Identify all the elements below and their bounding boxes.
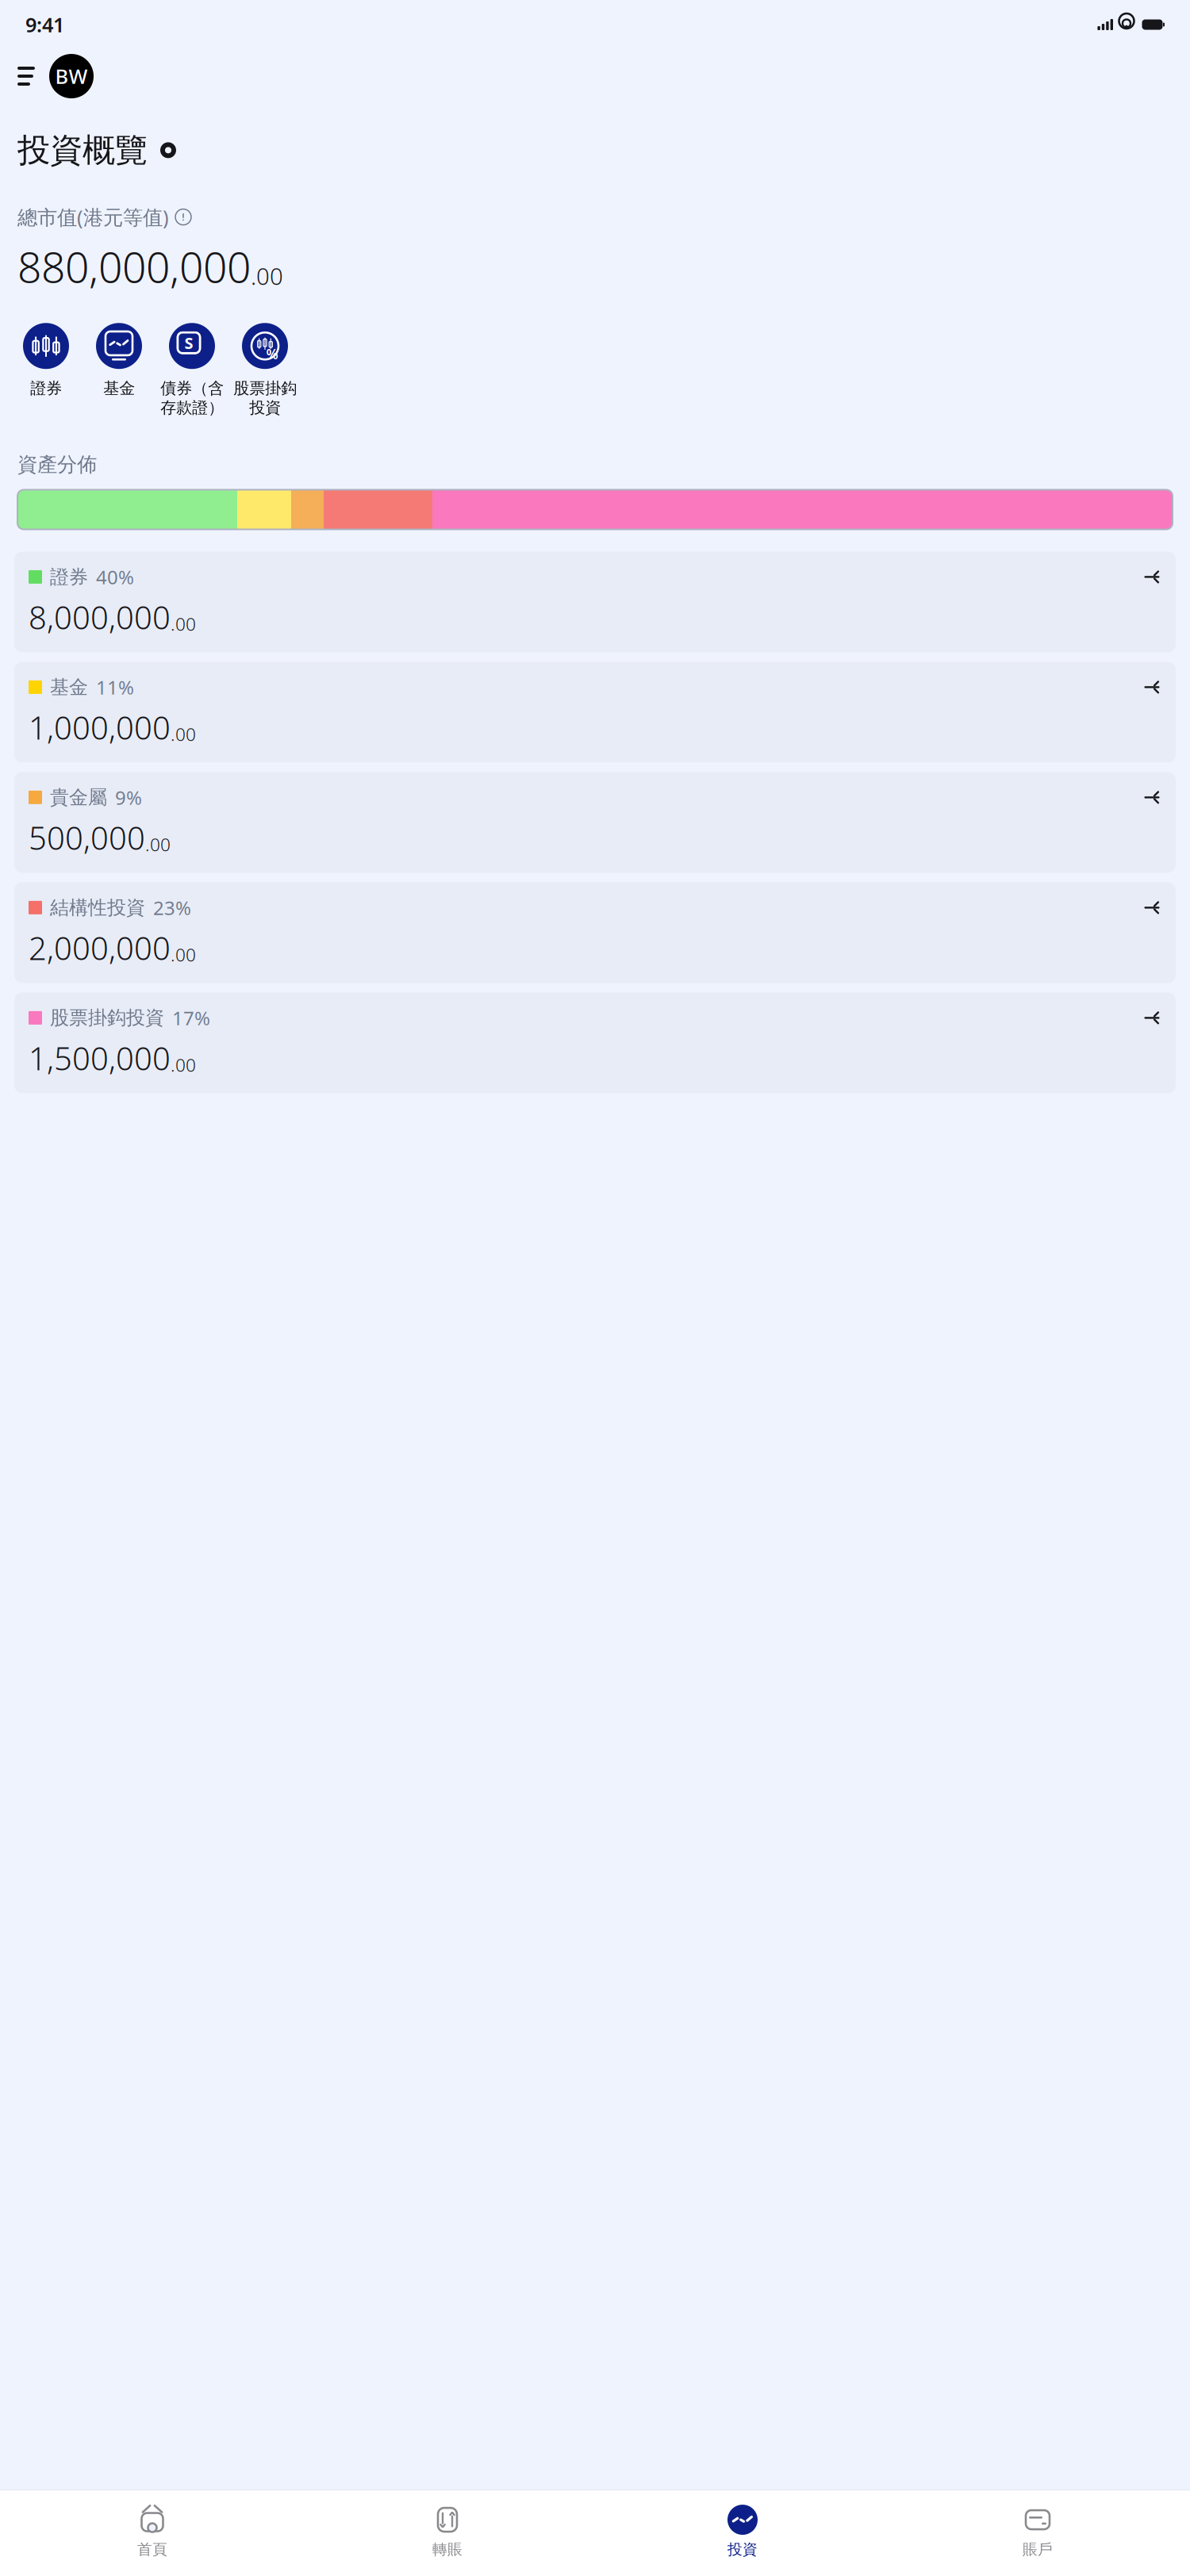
staticText: .00 [171,1053,196,1077]
button[interactable]: 基金 [14,662,1176,763]
staticText: 證券 [50,565,88,589]
button[interactable]: 證券 [14,552,1176,652]
staticText: 500,000 [29,816,145,858]
staticText: 40% [96,564,134,590]
button[interactable]: 轉賬 [300,2500,595,2563]
staticText: 2,000,000 [29,927,171,969]
staticText: % [266,345,278,363]
staticText: 結構性投資 [50,896,145,919]
staticText: 880,000,000 [17,238,251,294]
staticText: 股票掛鈎投資 [233,378,297,417]
button[interactable]: 結構性投資 [14,882,1176,983]
button[interactable]: 貴金屬 [14,772,1176,873]
staticText: 轉賬 [432,2540,463,2559]
staticText: 貴金屬 [50,786,107,809]
button[interactable]: Hide balance [160,142,176,158]
staticText: .00 [171,722,196,746]
button[interactable]: 證券 [10,323,83,398]
staticText: 資產分佈 [17,452,97,477]
button[interactable]: 首頁 [5,2500,300,2563]
button[interactable]: Profile BW [49,54,94,98]
button[interactable]: 賬戶 [890,2500,1185,2563]
staticText: 9% [115,785,142,810]
staticText: .00 [251,260,283,291]
staticText: 1,000,000 [29,706,171,748]
staticText: 9:41 [25,11,64,38]
staticText: 基金 [103,378,135,398]
staticText: 投資概覽 [17,130,148,170]
staticText: 證券 [30,378,62,398]
staticText: 投資 [727,2540,758,2559]
staticText: 17% [172,1005,210,1030]
button[interactable]: Total market value info [175,209,191,225]
staticText: 11% [96,675,134,700]
staticText: 債券（含存款證） [160,378,224,417]
staticText: 23% [153,895,191,920]
staticText: BW [55,63,88,89]
button[interactable]: Menu [17,66,36,86]
staticText: 股票掛鈎投資 [50,1006,164,1030]
staticText: 基金 [50,675,88,699]
button[interactable]: 投資 [595,2500,890,2563]
staticText: 1,500,000 [29,1037,171,1079]
staticText: S [184,332,193,353]
staticText: 8,000,000 [29,596,171,638]
staticText: .00 [145,832,171,856]
button[interactable]: 基金 [83,323,155,398]
staticText: 總市值(港元等值) [17,204,169,230]
staticText: .00 [171,612,196,636]
staticText: 首頁 [137,2540,167,2559]
button[interactable]: S [155,323,228,417]
staticText: 賬戶 [1023,2540,1053,2559]
button[interactable]: % [228,323,301,417]
staticText: .00 [171,942,196,966]
button[interactable]: 股票掛鈎投資 [14,992,1176,1093]
